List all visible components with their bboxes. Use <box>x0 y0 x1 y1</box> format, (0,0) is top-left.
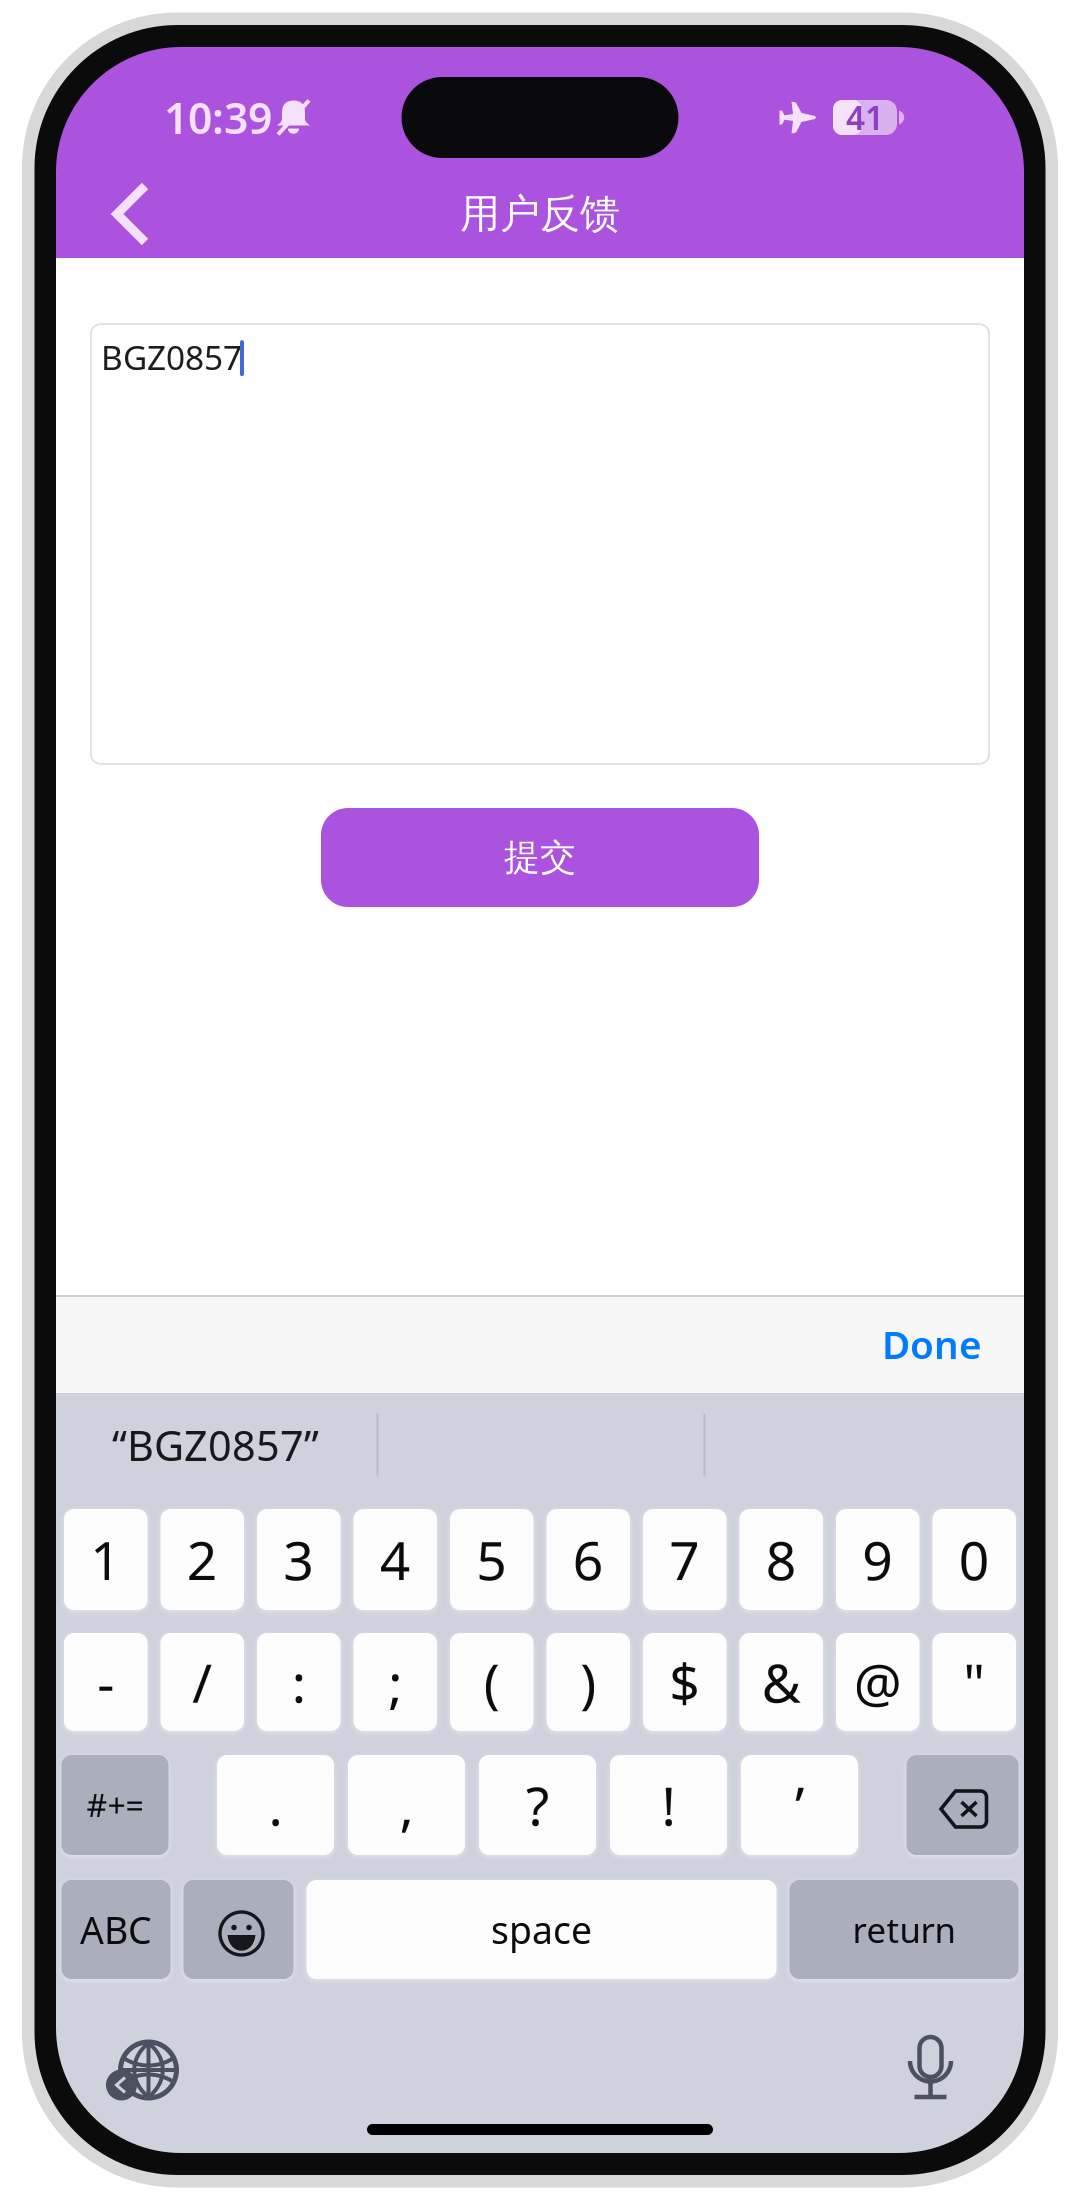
staticText: 7 <box>669 1524 700 1595</box>
button[interactable]: - <box>64 1633 147 1731</box>
button[interactable]: $ <box>643 1633 726 1731</box>
staticText: / <box>192 1647 212 1717</box>
staticText: , <box>399 1770 413 1840</box>
button[interactable]: 0 <box>932 1509 1016 1610</box>
staticText: 9 <box>862 1524 893 1595</box>
button[interactable]: @ <box>836 1633 919 1731</box>
button[interactable]: Emoji <box>183 1880 293 1979</box>
staticText: ! <box>661 1770 675 1840</box>
button[interactable]: 提交 <box>321 808 759 907</box>
button[interactable]: ( <box>450 1633 533 1731</box>
staticText: 2 <box>187 1524 218 1595</box>
button[interactable]: & <box>739 1633 823 1731</box>
button[interactable]: Change keyboard <box>96 2032 186 2120</box>
button[interactable]: #+= <box>61 1755 168 1855</box>
staticText: ABC <box>80 1905 152 1954</box>
button[interactable]: 9 <box>836 1509 919 1610</box>
button[interactable]: Done <box>856 1299 1008 1389</box>
staticText: space <box>491 1905 592 1954</box>
staticText: @ <box>854 1647 902 1717</box>
staticText: #+= <box>86 1784 143 1826</box>
button[interactable]: 7 <box>643 1509 726 1610</box>
button[interactable]: 2 <box>160 1509 244 1610</box>
staticText: & <box>762 1647 801 1717</box>
button[interactable]: 4 <box>353 1509 437 1610</box>
button[interactable]: Back <box>85 164 177 264</box>
staticText: ) <box>580 1647 596 1717</box>
staticText: ; <box>388 1647 402 1717</box>
staticText: . <box>268 1770 282 1840</box>
button[interactable]: 3 <box>257 1509 340 1610</box>
button[interactable]: : <box>257 1633 340 1731</box>
button[interactable]: return <box>789 1880 1018 1979</box>
button[interactable]: / <box>160 1633 244 1731</box>
staticText: 10:39 <box>164 89 272 146</box>
button[interactable]: Dictate <box>886 2032 976 2120</box>
staticText: 1 <box>90 1524 121 1595</box>
button[interactable]: BGZ0857 <box>91 324 989 764</box>
staticText: 41 <box>846 95 884 140</box>
staticText: 用户反馈 <box>460 189 620 238</box>
staticText: " <box>963 1647 985 1717</box>
button[interactable]: 1 <box>64 1509 147 1610</box>
staticText: “BGZ0857” <box>112 1418 319 1472</box>
staticText: BGZ0857 <box>101 335 242 379</box>
button[interactable]: 6 <box>546 1509 630 1610</box>
button[interactable]: ) <box>546 1633 630 1731</box>
staticText: 4 <box>380 1524 411 1595</box>
button[interactable]: 8 <box>739 1509 823 1610</box>
staticText: : <box>292 1647 306 1717</box>
button[interactable]: space <box>306 1880 776 1979</box>
staticText: Done <box>882 1318 982 1370</box>
staticText: 3 <box>283 1524 314 1595</box>
staticText: 0 <box>959 1524 990 1595</box>
button[interactable]: ; <box>353 1633 437 1731</box>
staticText: ? <box>526 1770 549 1840</box>
staticText: ( <box>484 1647 500 1717</box>
button[interactable]: ’ <box>741 1755 858 1855</box>
button[interactable]: " <box>932 1633 1016 1731</box>
button[interactable]: ABC <box>61 1880 170 1979</box>
button[interactable]: ! <box>610 1755 727 1855</box>
button[interactable]: . <box>217 1755 334 1855</box>
staticText: 6 <box>573 1524 604 1595</box>
button[interactable]: , <box>348 1755 465 1855</box>
staticText: 5 <box>476 1524 507 1595</box>
button[interactable]: Delete <box>906 1755 1018 1855</box>
staticText: 提交 <box>504 835 576 880</box>
staticText: - <box>97 1647 114 1717</box>
staticText: 8 <box>766 1524 797 1595</box>
staticText: ’ <box>795 1770 804 1840</box>
button[interactable]: 5 <box>450 1509 533 1610</box>
staticText: $ <box>669 1647 700 1717</box>
button[interactable]: ? <box>479 1755 596 1855</box>
staticText: return <box>852 1906 955 1952</box>
